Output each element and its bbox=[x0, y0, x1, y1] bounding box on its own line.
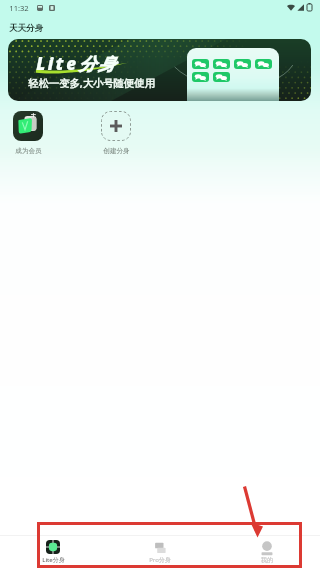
staticText: Pro分身 bbox=[149, 556, 171, 564]
button[interactable]: Pro分身 bbox=[106, 536, 213, 564]
staticText: 我的 bbox=[261, 556, 273, 564]
staticText: 成为会员 bbox=[15, 147, 42, 155]
button[interactable]: 我的 bbox=[213, 536, 320, 564]
button[interactable]: 成为会员 bbox=[0, 111, 72, 155]
staticText: 天天分身 bbox=[9, 23, 43, 34]
staticText: Lite分身 bbox=[42, 556, 65, 564]
button[interactable]: Lite分身 bbox=[0, 536, 106, 564]
staticText: 11:32 bbox=[9, 3, 29, 13]
staticText: 创建分身 bbox=[103, 147, 130, 155]
button[interactable]: Lite分身 bbox=[8, 39, 311, 101]
staticText: 轻松一变多,大小号随便使用 bbox=[28, 76, 155, 90]
button[interactable]: 创建分身 bbox=[72, 111, 160, 155]
staticText: Lite分身 bbox=[36, 52, 118, 75]
